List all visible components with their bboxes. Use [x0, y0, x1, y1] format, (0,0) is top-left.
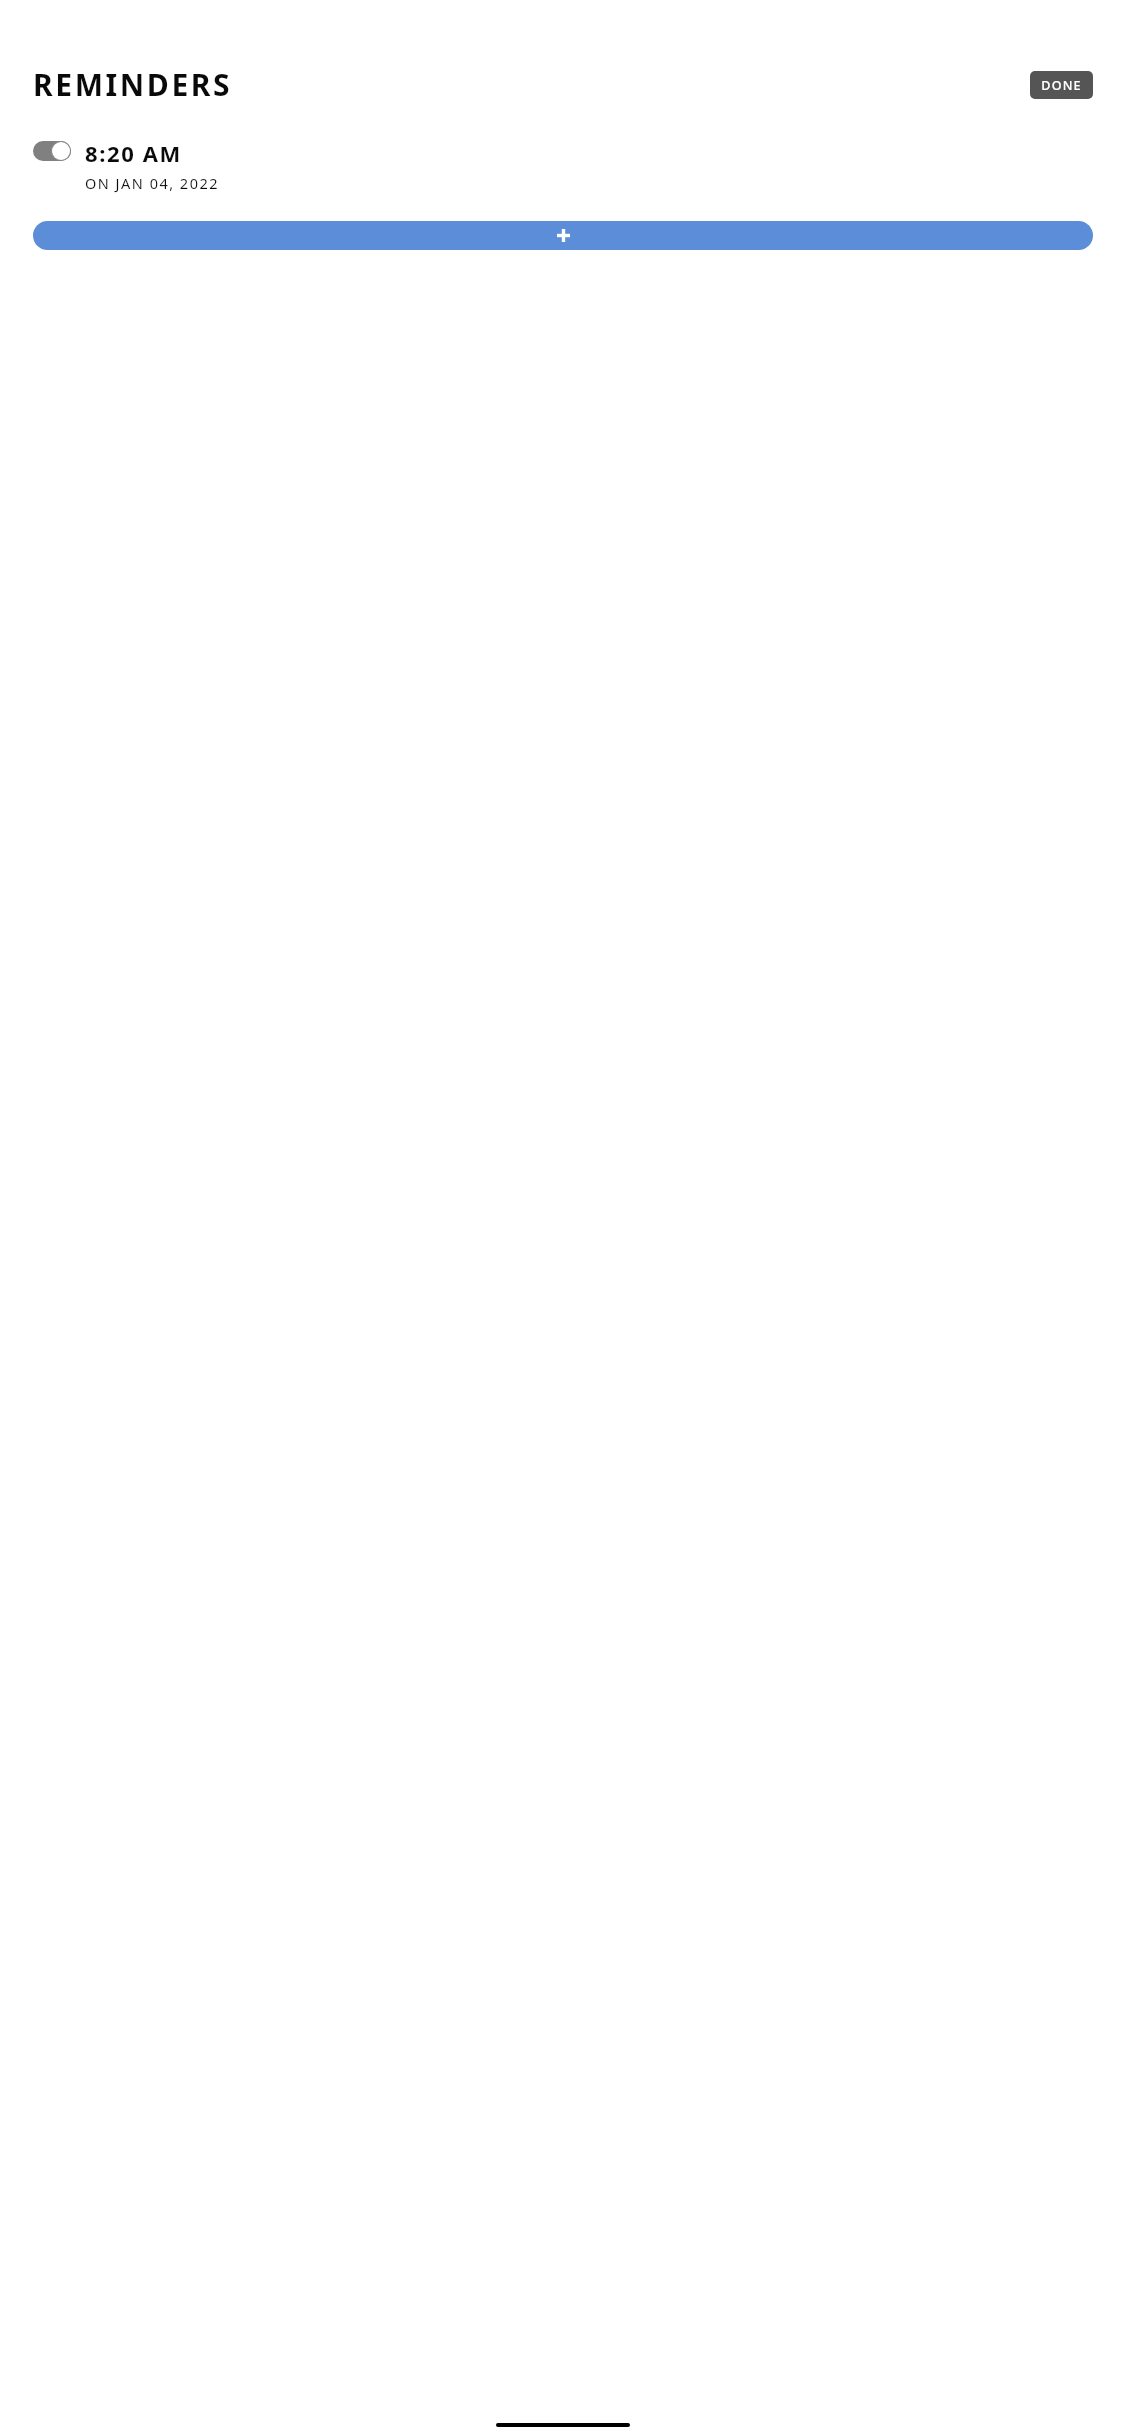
- staticText: ON JAN 04, 2022: [85, 173, 220, 193]
- staticText: REMINDERS: [33, 64, 233, 105]
- button[interactable]: Add reminder: [33, 221, 1093, 250]
- button[interactable]: DONE: [1030, 71, 1093, 99]
- button[interactable]: Toggle reminder: [33, 138, 1093, 193]
- button[interactable]: Toggle reminder: [33, 141, 71, 161]
- staticText: 8:20 AM: [85, 138, 182, 168]
- staticText: DONE: [1041, 77, 1082, 94]
